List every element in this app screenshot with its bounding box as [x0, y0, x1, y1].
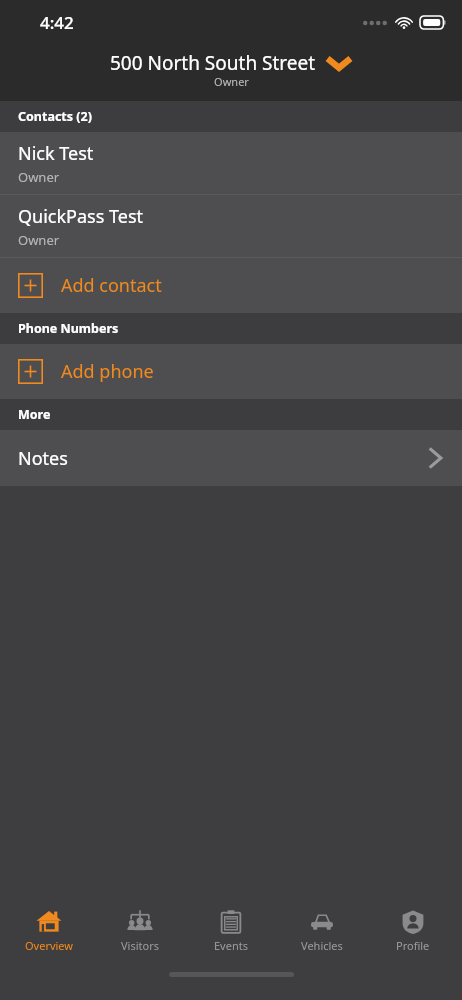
staticText: Add phone [61, 359, 154, 384]
staticText: Notes [18, 446, 68, 471]
button[interactable]: Profile [371, 909, 455, 953]
staticText: QuickPass Test [18, 204, 144, 229]
staticText: Add contact [61, 273, 162, 298]
button[interactable]: Events [189, 909, 273, 953]
staticText: Visitors [121, 938, 159, 953]
staticText: Contacts (2) [18, 108, 92, 125]
staticText: Owner [18, 168, 60, 186]
button[interactable]: Nick Test [0, 132, 462, 194]
staticText: Vehicles [301, 938, 343, 953]
button[interactable]: Vehicles [280, 909, 364, 953]
button[interactable]: Add contact [0, 258, 462, 313]
button[interactable]: Add phone [0, 344, 462, 399]
staticText: Owner [18, 231, 60, 249]
button[interactable]: 500 North South Street [110, 50, 352, 76]
staticText: Events [214, 938, 248, 953]
button[interactable]: Visitors [98, 909, 182, 953]
staticText: Profile [396, 938, 430, 953]
button[interactable]: QuickPass Test [0, 195, 462, 257]
staticText: 500 North South Street [110, 50, 316, 76]
staticText: Nick Test [18, 141, 94, 166]
staticText: Overview [25, 938, 73, 953]
button[interactable]: Overview [7, 909, 91, 953]
other: Select property [326, 55, 352, 71]
button[interactable]: Notes [0, 430, 462, 486]
staticText: Owner [214, 74, 249, 89]
staticText: More [18, 406, 51, 423]
staticText: 4:42 [40, 11, 74, 34]
staticText: Phone Numbers [18, 320, 119, 337]
